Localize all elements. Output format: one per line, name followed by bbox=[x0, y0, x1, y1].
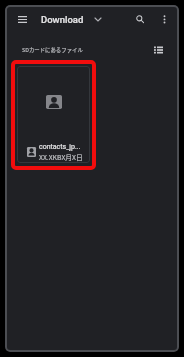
button[interactable]: Search bbox=[130, 9, 150, 29]
staticText: XX.XKBX月X日 bbox=[39, 152, 83, 162]
button[interactable]: Open navigation drawer bbox=[13, 10, 31, 28]
staticText: SDカードにあるファイル bbox=[22, 46, 83, 54]
button[interactable]: Switch to list view bbox=[149, 42, 167, 57]
button[interactable]: More options bbox=[154, 9, 174, 29]
staticText: Download bbox=[41, 14, 84, 25]
button[interactable]: Choose folder bbox=[91, 13, 104, 26]
staticText: contacts_jp... bbox=[39, 143, 81, 151]
button[interactable]: contacts_jp... bbox=[17, 66, 90, 163]
